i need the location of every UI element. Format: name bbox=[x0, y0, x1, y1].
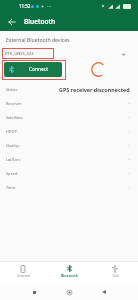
staticText: Speed: bbox=[6, 171, 19, 176]
staticText: RTK_GNSS_424 bbox=[5, 51, 34, 57]
staticText: Receiver: bbox=[6, 101, 23, 106]
staticText: Connect bbox=[29, 66, 48, 73]
staticText: Internal bbox=[17, 273, 30, 278]
button[interactable]: Home bbox=[63, 286, 75, 298]
staticText: Lat/Lon: bbox=[6, 157, 21, 162]
staticText: - bbox=[128, 100, 130, 106]
staticText: - bbox=[128, 156, 130, 162]
staticText: - bbox=[128, 184, 130, 190]
staticText: Time: bbox=[6, 185, 16, 190]
button[interactable]: Open device list bbox=[116, 47, 130, 61]
button[interactable]: RTK_GNSS_424 bbox=[2, 48, 54, 59]
staticText: - bbox=[128, 170, 130, 176]
button[interactable]: Usb bbox=[92, 262, 138, 284]
staticText: Bluetooth bbox=[61, 273, 78, 278]
staticText: Bluetooth bbox=[24, 17, 56, 26]
staticText: HDOP: bbox=[6, 129, 18, 134]
button[interactable]: Bluetooth bbox=[46, 262, 92, 284]
button[interactable]: Back bbox=[0, 12, 24, 31]
staticText: Satellites: bbox=[6, 115, 24, 120]
staticText: GPS receiver disconnected bbox=[59, 86, 130, 93]
staticText: Usb bbox=[112, 273, 119, 278]
staticText: - bbox=[128, 114, 130, 120]
staticText: 11:52 bbox=[19, 3, 31, 9]
button[interactable]: Recents bbox=[28, 286, 40, 298]
staticText: Quality: bbox=[6, 143, 20, 148]
staticText: - bbox=[128, 142, 130, 148]
staticText: - bbox=[128, 128, 130, 134]
staticText: Status: bbox=[6, 87, 19, 92]
staticText: External Bluetooth devices bbox=[6, 37, 70, 44]
button[interactable]: Back bbox=[98, 286, 110, 298]
button[interactable]: Internal bbox=[0, 262, 46, 284]
staticText: ••• bbox=[47, 4, 52, 9]
button[interactable]: Connect bbox=[4, 62, 62, 77]
